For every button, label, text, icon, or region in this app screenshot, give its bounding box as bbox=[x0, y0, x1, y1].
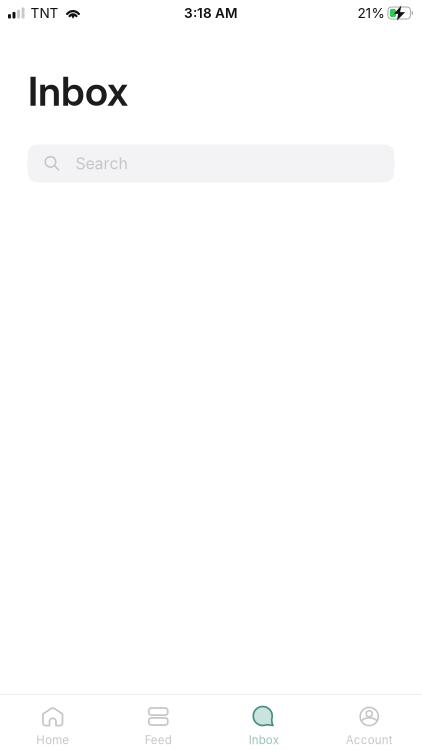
button[interactable]: Inbox bbox=[211, 695, 316, 750]
button[interactable]: Feed bbox=[105, 695, 211, 750]
button[interactable]: Search bbox=[27, 144, 394, 182]
staticText: Feed bbox=[145, 733, 172, 747]
staticText: TNT bbox=[30, 5, 58, 21]
staticText: Inbox bbox=[28, 67, 128, 115]
staticText: Account bbox=[346, 733, 393, 747]
staticText: Search bbox=[75, 154, 127, 173]
staticText: 3:18 AM bbox=[184, 5, 238, 21]
staticText: 21% bbox=[357, 5, 384, 21]
button[interactable]: Account bbox=[316, 695, 422, 750]
button[interactable]: Home bbox=[0, 695, 105, 750]
staticText: Home bbox=[36, 733, 69, 747]
staticText: Inbox bbox=[249, 733, 279, 747]
